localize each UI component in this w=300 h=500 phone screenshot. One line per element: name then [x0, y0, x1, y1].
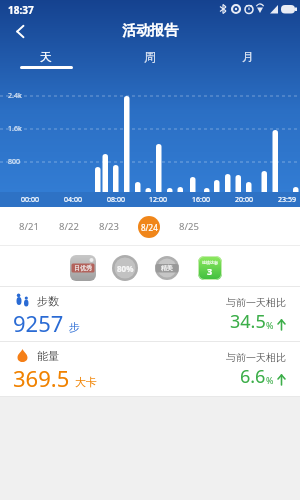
button[interactable]: 80% [112, 255, 138, 281]
staticText: 2.4k [8, 91, 22, 101]
button[interactable]: 步数 [0, 287, 300, 341]
button[interactable]: 月 [223, 46, 273, 66]
staticText: 12:00 [149, 195, 167, 205]
staticText: 08:00 [107, 195, 125, 205]
staticText: 步 [69, 320, 80, 334]
button[interactable]: 8/21 [14, 215, 44, 238]
staticText: 与前一天相比 [226, 296, 286, 309]
staticText: 18:37 [8, 3, 34, 17]
staticText: 8/25 [179, 220, 199, 233]
staticText: 8/22 [59, 220, 79, 233]
staticText: 04:00 [64, 195, 82, 205]
button[interactable]: 8/23 [94, 215, 124, 238]
staticText: 能量 [37, 349, 59, 363]
button[interactable]: 连续达标 [198, 256, 222, 280]
button[interactable]: 日优秀 [69, 254, 97, 282]
staticText: 16:00 [192, 195, 210, 205]
button[interactable]: 能量 [0, 342, 300, 396]
staticText: 月 [242, 49, 254, 64]
staticText: 连续达标 [202, 260, 218, 265]
staticText: 活动报告 [122, 22, 178, 40]
staticText: 3 [207, 265, 213, 277]
staticText: 369.5 [13, 363, 70, 393]
button[interactable]: 天 [21, 46, 71, 66]
staticText: 9257 [13, 308, 64, 338]
staticText: 8/24 [141, 222, 158, 233]
staticText: 800 [8, 157, 21, 167]
staticText: 8/21 [19, 220, 39, 233]
staticText: 精美 [161, 264, 173, 272]
staticText: 34.5 [230, 309, 266, 334]
staticText: 8/23 [99, 220, 119, 233]
staticText: 6.6 [240, 364, 266, 389]
staticText: 步数 [37, 294, 59, 308]
staticText: 日优秀 [74, 264, 92, 272]
staticText: 23:59 [278, 195, 296, 205]
staticText: % [266, 319, 274, 331]
staticText: 00:00 [21, 195, 39, 205]
button[interactable]: 精美 [155, 256, 179, 280]
staticText: 周 [144, 49, 156, 64]
staticText: 1.6k [8, 124, 22, 134]
staticText: 20:00 [235, 195, 253, 205]
staticText: 与前一天相比 [226, 351, 286, 364]
button[interactable]: 周 [125, 46, 175, 66]
button[interactable]: 8/24 [134, 215, 164, 238]
button[interactable] [2, 16, 38, 46]
button[interactable]: 8/25 [174, 215, 204, 238]
staticText: 80% [117, 263, 134, 274]
button[interactable]: 8/22 [54, 215, 84, 238]
staticText: % [266, 374, 274, 386]
staticText: 天 [40, 49, 52, 64]
staticText: 大卡 [75, 375, 97, 389]
